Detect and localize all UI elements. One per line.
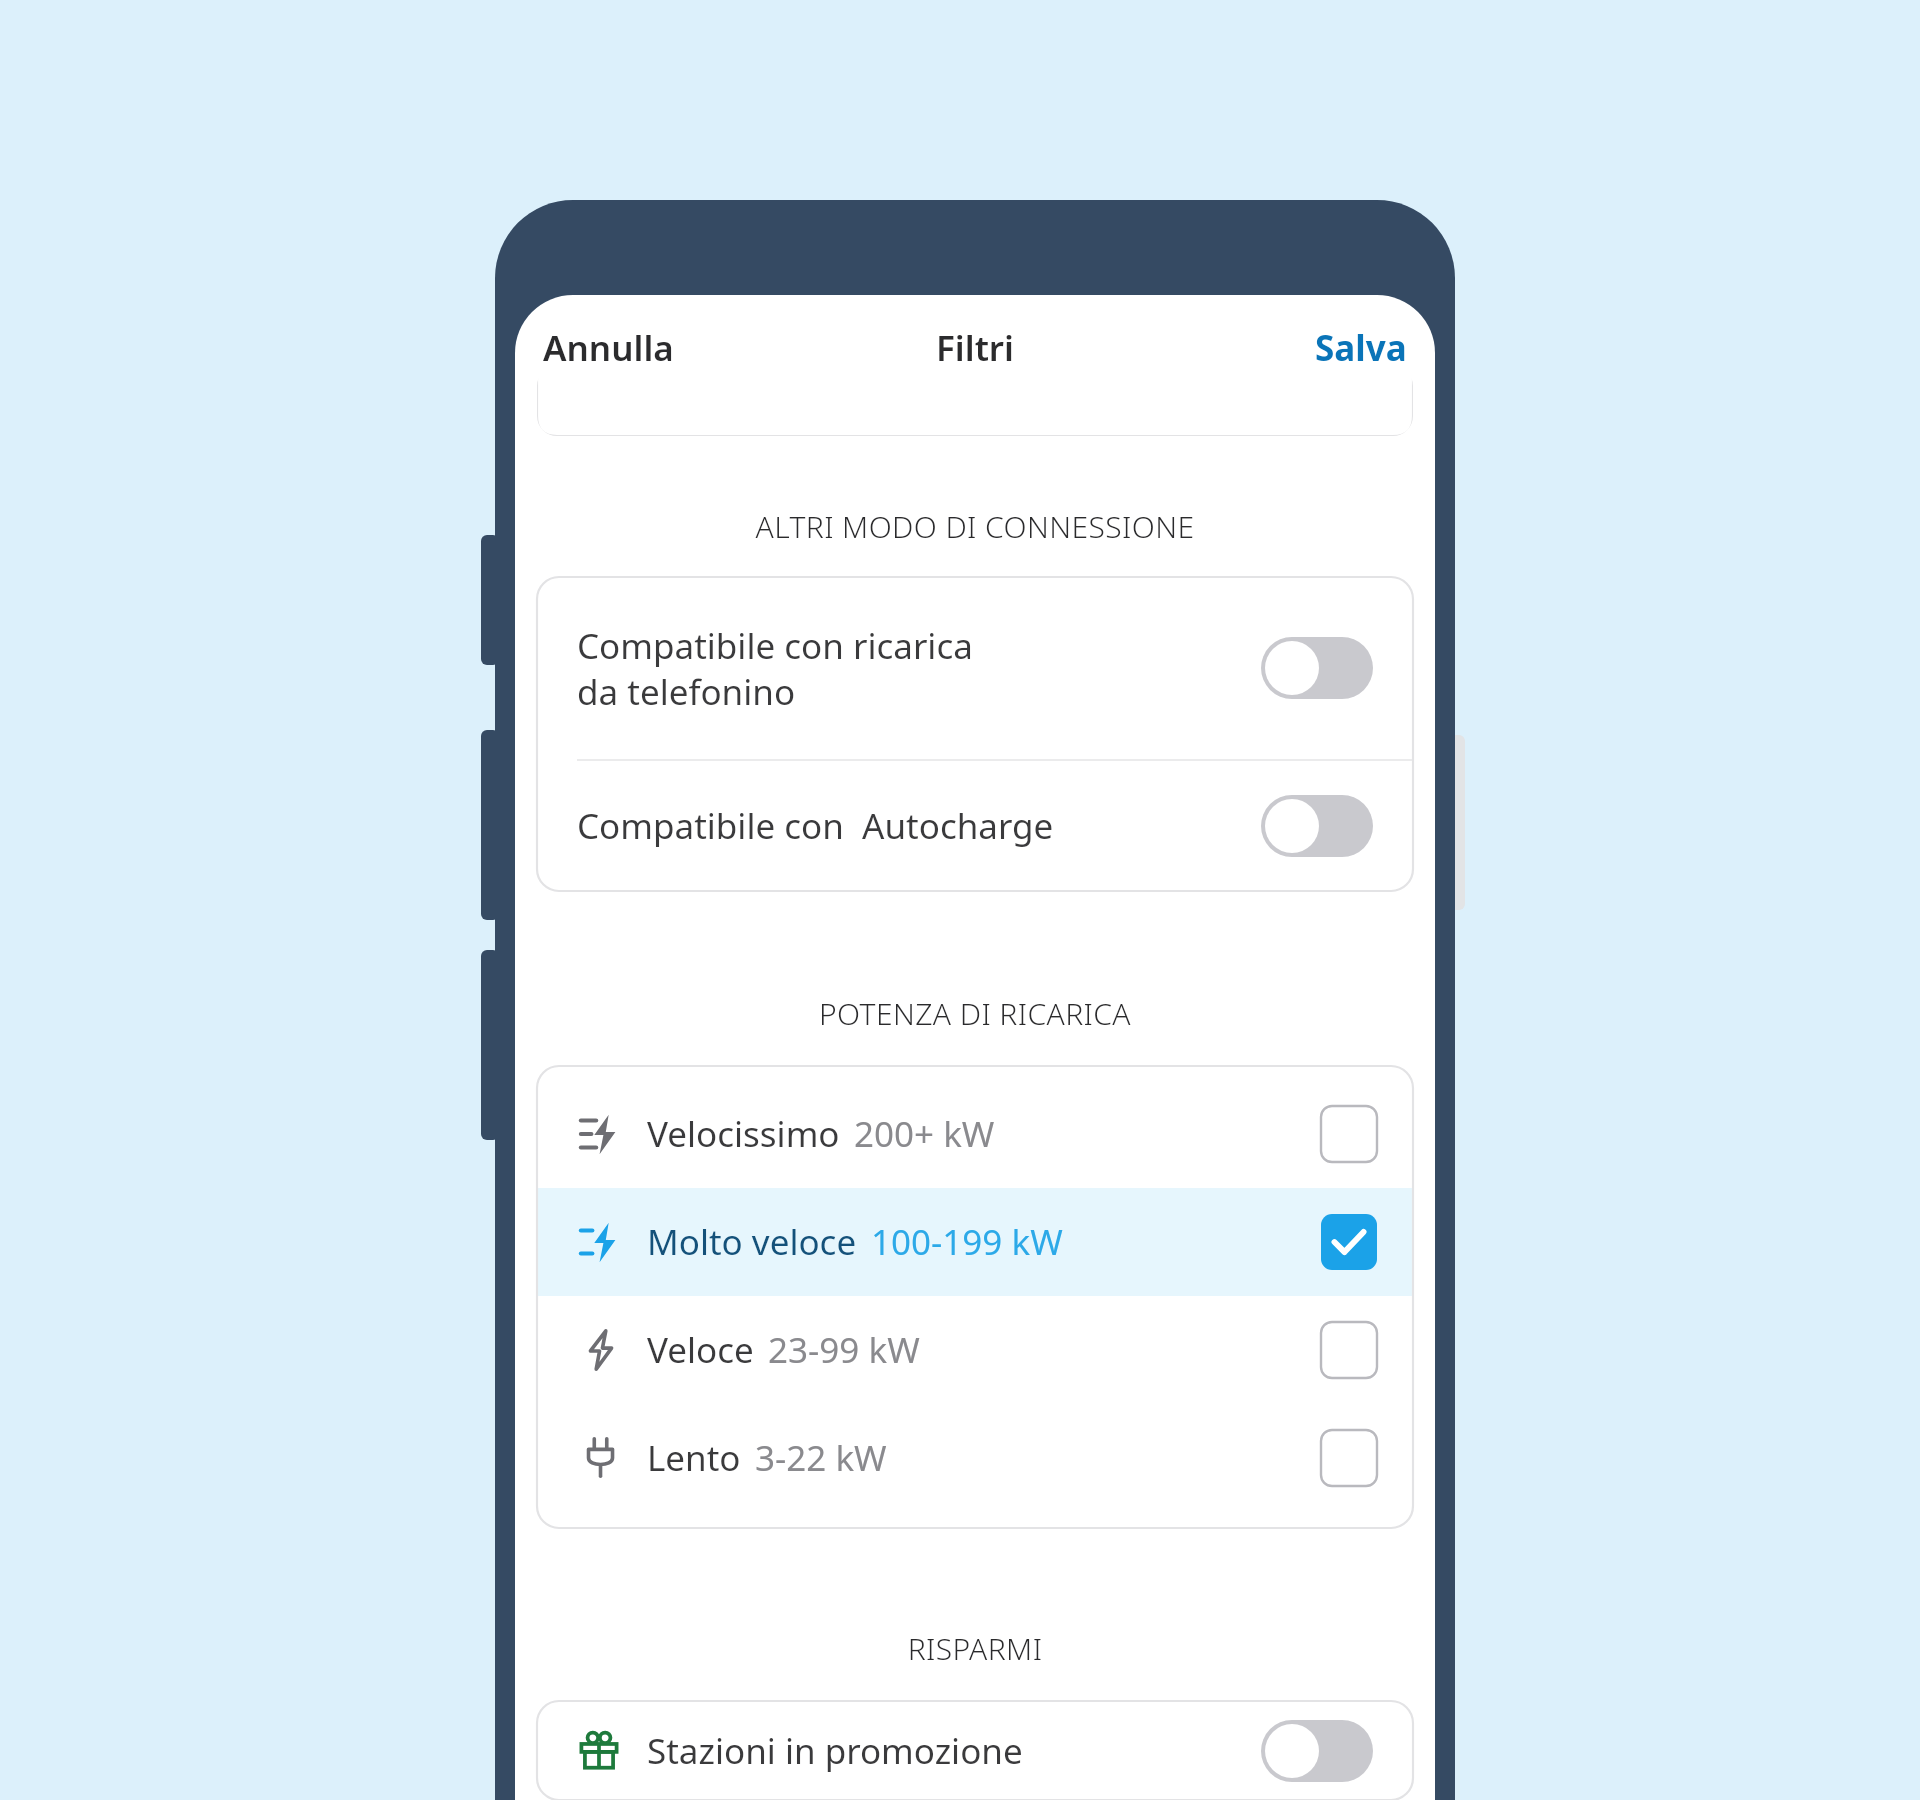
staticText: POTENZA DI RICARICA (515, 993, 1435, 1034)
staticText: ALTRI MODO DI CONNESSIONE (515, 506, 1435, 547)
staticText: Velocissimo (647, 1110, 840, 1158)
button[interactable]: Toggle (1261, 795, 1373, 857)
button[interactable]: Compatibile con Autocharge (537, 761, 1413, 891)
staticText: Salva (1315, 324, 1407, 372)
button[interactable]: Veloce (537, 1296, 1413, 1404)
button[interactable]: Select (1321, 1214, 1377, 1270)
button[interactable]: Select (1321, 1106, 1377, 1162)
button[interactable]: Compatibile con ricarica da telefonino (537, 577, 1413, 759)
staticText: Molto veloce (647, 1218, 857, 1266)
button[interactable]: Salva (1309, 316, 1413, 380)
staticText: Veloce (647, 1326, 754, 1374)
staticText: 100-199 kW (871, 1218, 1063, 1266)
button[interactable]: Lento (537, 1404, 1413, 1512)
button[interactable]: Molto veloce (537, 1188, 1413, 1296)
staticText: Compatibile con ricarica da telefonino (577, 622, 973, 715)
staticText: 200+ kW (854, 1110, 995, 1158)
staticText: RISPARMI (515, 1628, 1435, 1669)
button[interactable]: Stazioni in promozione (537, 1701, 1413, 1800)
staticText: Filtri (936, 324, 1014, 372)
staticText: Annulla (543, 324, 674, 372)
staticText: Compatibile con Autocharge (577, 802, 1054, 850)
staticText: 3-22 kW (755, 1434, 887, 1482)
button[interactable]: Velocissimo (537, 1080, 1413, 1188)
button[interactable]: Toggle (1261, 637, 1373, 699)
button[interactable]: Toggle (1261, 1720, 1373, 1782)
staticText: 23-99 kW (768, 1326, 920, 1374)
button[interactable]: Annulla (537, 316, 680, 380)
button[interactable]: Select (1321, 1322, 1377, 1378)
staticText: Lento (647, 1434, 741, 1482)
staticText: Stazioni in promozione (647, 1727, 1023, 1775)
button[interactable]: Select (1321, 1430, 1377, 1486)
